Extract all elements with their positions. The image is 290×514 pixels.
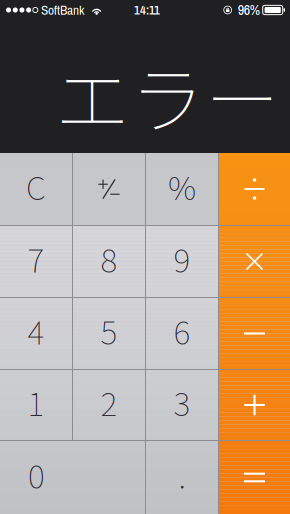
button[interactable]: 3 — [146, 370, 218, 440]
staticText: 0 — [28, 451, 45, 498]
staticText: 6 — [173, 307, 190, 354]
staticText: 14:11 — [134, 1, 160, 19]
button[interactable]: Clear — [0, 153, 72, 225]
staticText: . — [178, 451, 185, 498]
button[interactable]: 8 — [73, 226, 145, 297]
button[interactable]: Decimal point — [146, 441, 218, 514]
button[interactable]: Plus minus — [73, 153, 145, 225]
staticText: SoftBank — [41, 1, 84, 19]
staticText: 2 — [100, 379, 117, 425]
button[interactable]: 4 — [0, 298, 72, 369]
staticText: 96% — [238, 0, 260, 19]
button[interactable]: Plus — [219, 370, 290, 440]
button[interactable]: 7 — [0, 226, 72, 297]
button[interactable]: 6 — [146, 298, 218, 369]
staticText: 9 — [173, 235, 190, 282]
staticText: 8 — [100, 235, 117, 282]
button[interactable]: 5 — [73, 298, 145, 369]
button[interactable]: Minus — [219, 298, 290, 369]
button[interactable]: Divide — [219, 153, 290, 225]
button[interactable]: Percent — [146, 153, 218, 225]
button[interactable]: Multiply — [219, 226, 290, 297]
button[interactable]: 9 — [146, 226, 218, 297]
button[interactable]: 2 — [73, 370, 145, 440]
staticText: 5 — [100, 307, 117, 354]
staticText: エラー — [55, 41, 280, 149]
staticText: 3 — [173, 379, 190, 425]
staticText: 7 — [27, 235, 44, 282]
staticText: C — [26, 163, 46, 209]
button[interactable]: 0 — [0, 441, 145, 514]
button[interactable]: 1 — [0, 370, 72, 440]
staticText: 1 — [27, 379, 44, 425]
staticText: % — [168, 163, 196, 209]
staticText: 4 — [27, 307, 44, 354]
button[interactable]: Equals — [219, 441, 290, 514]
